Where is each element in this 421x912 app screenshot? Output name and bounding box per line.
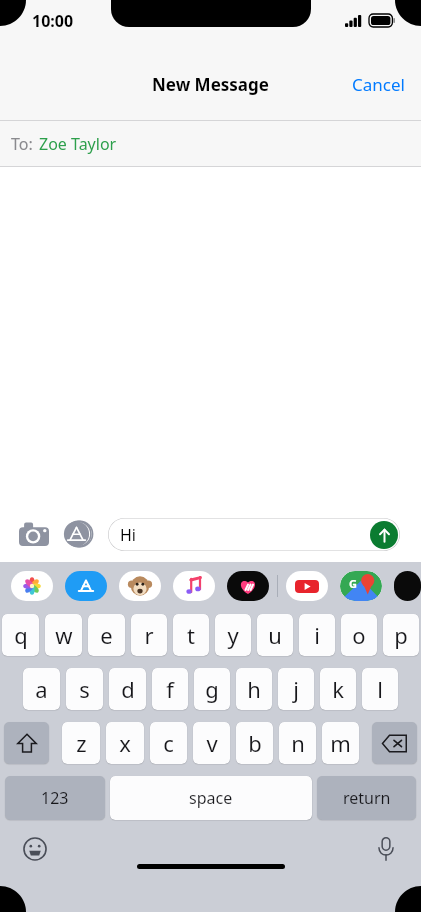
staticText: u (268, 620, 282, 650)
staticText: r (144, 620, 154, 650)
button[interactable]: w (45, 614, 82, 656)
button[interactable]: Music (173, 571, 215, 601)
staticText: e (100, 620, 113, 650)
staticText: c (163, 728, 174, 758)
staticText: o (352, 620, 366, 650)
staticText: g (205, 674, 219, 704)
button[interactable]: More (394, 571, 421, 601)
staticText: Hi (120, 524, 136, 546)
button[interactable]: space (110, 776, 312, 820)
staticText: i (314, 620, 320, 650)
staticText: b (248, 728, 262, 758)
button[interactable]: m (322, 722, 359, 764)
staticText: w (55, 620, 73, 650)
staticText: t (187, 620, 195, 650)
button[interactable]: Digital Touch (227, 571, 269, 601)
button[interactable]: App Store (56, 512, 100, 556)
button[interactable]: k (320, 668, 356, 710)
button[interactable]: j (278, 668, 314, 710)
staticText: p (394, 620, 408, 650)
button[interactable]: z (62, 722, 100, 764)
staticText: 123 (41, 787, 69, 809)
staticText: 10:00 (32, 10, 74, 32)
staticText: h (247, 674, 261, 704)
button[interactable]: Emoji (14, 828, 56, 870)
staticText: G (349, 576, 357, 591)
staticText: y (227, 620, 239, 650)
button[interactable]: o (341, 614, 377, 656)
staticText: x (119, 728, 131, 758)
staticText: a (35, 674, 48, 704)
button[interactable]: y (215, 614, 251, 656)
button[interactable]: 123 (5, 776, 105, 820)
button[interactable]: q (2, 614, 39, 656)
button[interactable]: r (131, 614, 167, 656)
button[interactable]: YouTube (286, 571, 328, 601)
staticText: n (291, 728, 305, 758)
button[interactable]: t (173, 614, 209, 656)
button[interactable]: Shift (4, 722, 49, 764)
button[interactable]: n (279, 722, 316, 764)
staticText: m (330, 728, 351, 758)
button[interactable]: c (150, 722, 187, 764)
staticText: s (79, 674, 90, 704)
button[interactable]: p (383, 614, 419, 656)
staticText: j (293, 674, 299, 704)
staticText: d (121, 674, 135, 704)
staticText: space (189, 787, 233, 809)
button[interactable]: To: (0, 121, 421, 167)
button[interactable]: Maps (340, 571, 382, 601)
button[interactable]: s (66, 668, 103, 710)
button[interactable]: x (106, 722, 144, 764)
staticText: f (166, 674, 174, 704)
staticText: New Message (152, 73, 269, 96)
button[interactable]: Cancel (336, 63, 421, 106)
button[interactable]: i (299, 614, 335, 656)
staticText: z (76, 728, 87, 758)
staticText: l (377, 674, 383, 704)
button[interactable]: a (23, 668, 60, 710)
button[interactable]: Dictation (365, 828, 407, 870)
button[interactable]: f (152, 668, 188, 710)
button[interactable]: Hi (108, 518, 400, 551)
button[interactable]: d (109, 668, 146, 710)
button[interactable]: Memoji (119, 571, 161, 601)
button[interactable]: l (362, 668, 398, 710)
staticText: return (343, 787, 391, 809)
staticText: q (14, 620, 28, 650)
button[interactable]: v (193, 722, 230, 764)
staticText: v (206, 728, 218, 758)
button[interactable]: App Store (65, 571, 107, 601)
button[interactable]: e (88, 614, 125, 656)
button[interactable]: u (257, 614, 293, 656)
button[interactable]: Photos (11, 571, 53, 601)
button[interactable]: Send (370, 521, 398, 549)
staticText: To: (11, 133, 33, 155)
staticText: Cancel (352, 73, 405, 96)
button[interactable]: b (236, 722, 273, 764)
button[interactable]: return (317, 776, 416, 820)
staticText: k (332, 674, 344, 704)
button[interactable]: h (236, 668, 272, 710)
button[interactable]: Camera (12, 512, 56, 556)
button[interactable]: g (194, 668, 230, 710)
staticText: Zoe Taylor (39, 133, 117, 155)
button[interactable]: Backspace (372, 722, 417, 764)
